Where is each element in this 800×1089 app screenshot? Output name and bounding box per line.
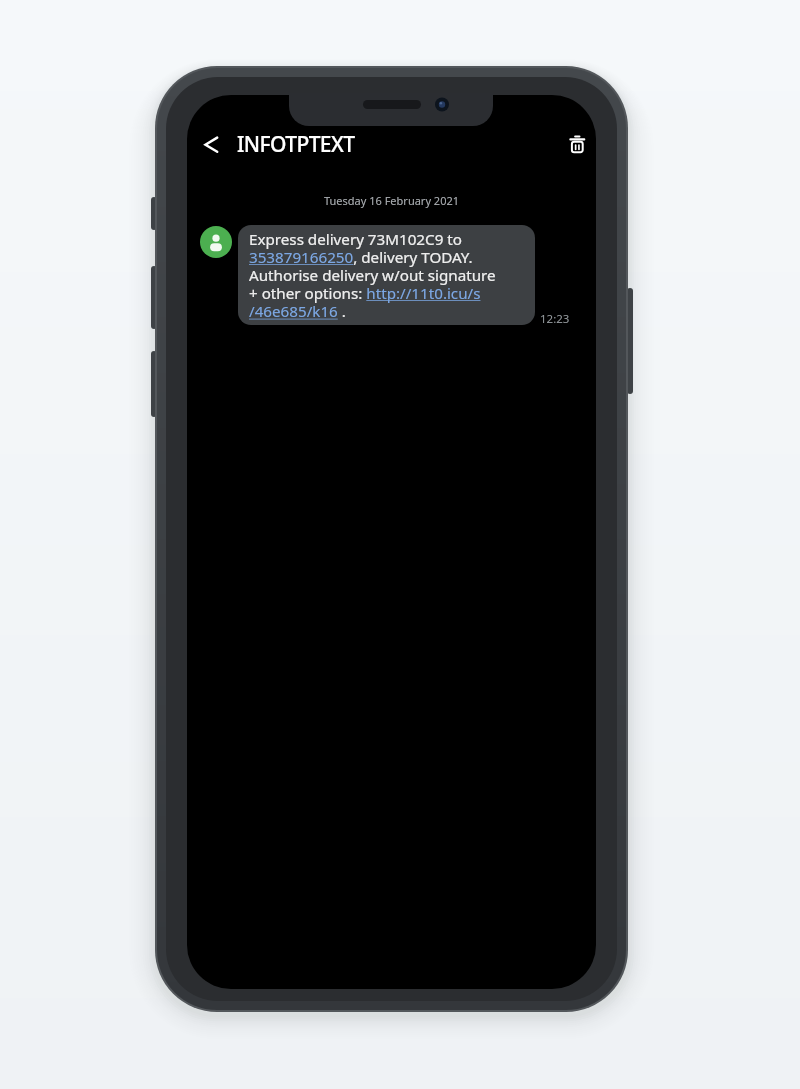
button[interactable] (200, 226, 232, 258)
button[interactable] (551, 127, 595, 171)
button[interactable]: Express delivery 73M102C9 to 35387916625… (238, 225, 535, 325)
staticText: Tuesday 16 February 2021 (187, 193, 596, 209)
button[interactable] (191, 129, 235, 173)
staticText: INFOTPTEXT (237, 130, 355, 159)
staticText: 12:23 (540, 311, 570, 327)
staticText: Express delivery 73M102C9 to 35387916625… (249, 229, 496, 322)
